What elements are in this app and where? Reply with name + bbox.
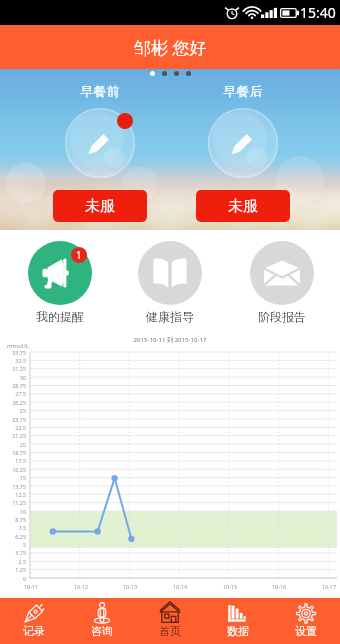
staticText: 7.5 <box>0 524 26 531</box>
staticText: 20 <box>0 441 26 448</box>
staticText: 早餐后 <box>203 83 283 99</box>
staticText: 10 <box>0 508 26 515</box>
staticText: 15 <box>0 474 26 481</box>
staticText: 25 <box>0 407 26 414</box>
staticText: 10-12 <box>66 583 96 590</box>
staticText: 18.75 <box>0 449 26 456</box>
staticText: 未服 <box>228 197 258 216</box>
staticText: 10-11 <box>16 583 46 590</box>
staticText: 2015-10-11 到 2015-10-17 <box>110 335 230 343</box>
staticText: 28.75 <box>0 382 26 389</box>
staticText: 数据 <box>227 624 249 638</box>
staticText: 记录 <box>23 624 45 638</box>
staticText: 我的提醒 <box>14 309 106 324</box>
staticText: 10-17 <box>314 583 340 590</box>
staticText: 8.75 <box>0 516 26 523</box>
staticText: mmol/L <box>7 342 29 350</box>
staticText: 22.5 <box>0 424 26 431</box>
staticText: 30 <box>0 374 26 381</box>
staticText: 设置 <box>295 624 317 638</box>
button[interactable]: 首页 <box>136 598 204 644</box>
button[interactable]: 邹彬 您好 <box>0 25 340 69</box>
button[interactable]: 早餐前 未记录 <box>62 105 138 181</box>
staticText: 早餐前 <box>60 83 140 99</box>
button[interactable]: 未服 <box>53 190 147 222</box>
staticText: 1.25 <box>0 566 26 573</box>
staticText: 咨询 <box>91 624 113 638</box>
button[interactable]: 设置 <box>272 598 340 644</box>
staticText: 33.75 <box>0 349 26 356</box>
staticText: 17.5 <box>0 457 26 464</box>
staticText: 1 <box>76 248 82 262</box>
staticText: 0 <box>0 575 26 582</box>
staticText: 32.5 <box>0 357 26 364</box>
staticText: 27.5 <box>0 390 26 397</box>
staticText: 健康指导 <box>124 309 216 324</box>
staticText: 10-13 <box>115 583 145 590</box>
staticText: 13.75 <box>0 483 26 490</box>
staticText: 23.75 <box>0 416 26 423</box>
staticText: 21.25 <box>0 432 26 439</box>
button[interactable]: 早餐后 <box>205 105 281 181</box>
button[interactable]: 未服 <box>196 190 290 222</box>
staticText: 阶段报告 <box>236 309 328 324</box>
staticText: 6.25 <box>0 533 26 540</box>
staticText: 11.25 <box>0 499 26 506</box>
staticText: 10-15 <box>215 583 245 590</box>
button[interactable]: 咨询 <box>68 598 136 644</box>
staticText: 26.25 <box>0 399 26 406</box>
staticText: 未服 <box>85 197 115 216</box>
staticText: 16.25 <box>0 466 26 473</box>
staticText: 邹彬 您好 <box>134 36 207 59</box>
button[interactable]: 健康指导 <box>124 235 216 325</box>
button[interactable]: 我的提醒 <box>14 235 106 325</box>
staticText: 10-14 <box>165 583 195 590</box>
staticText: 10-16 <box>264 583 294 590</box>
staticText: 3.75 <box>0 549 26 556</box>
staticText: 首页 <box>159 624 181 638</box>
button[interactable]: 记录 <box>0 598 68 644</box>
button[interactable]: 数据 <box>204 598 272 644</box>
staticText: 2.5 <box>0 558 26 565</box>
staticText: 15:40 <box>300 3 336 22</box>
staticText: 31.25 <box>0 365 26 372</box>
staticText: 5 <box>0 541 26 548</box>
button[interactable]: 阶段报告 <box>236 235 328 325</box>
staticText: 12.5 <box>0 491 26 498</box>
